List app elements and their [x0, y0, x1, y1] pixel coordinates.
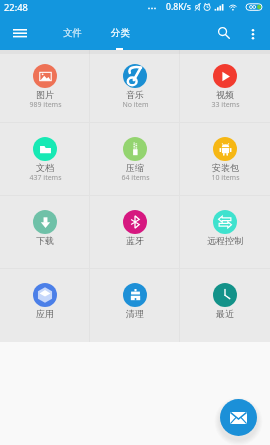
staticText: 安装包 [212, 162, 239, 173]
button[interactable]: More options [243, 18, 263, 50]
staticText: 437 items [29, 173, 62, 183]
staticText: 应用 [36, 308, 54, 319]
staticText: 视频 [216, 89, 234, 100]
staticText: 最近 [216, 308, 234, 319]
button[interactable]: 压缩 [90, 123, 180, 195]
staticText: 远程控制 [207, 235, 243, 246]
staticText: 33 items [211, 100, 240, 110]
button[interactable]: 清理 [90, 269, 180, 342]
button[interactable]: 文档 [0, 123, 90, 195]
staticText: 64 items [121, 173, 150, 183]
button[interactable]: Compose message [220, 399, 257, 436]
staticText: 文件 [63, 27, 82, 39]
button[interactable]: 最近 [180, 269, 270, 342]
button[interactable]: 蓝牙 [90, 196, 180, 268]
button[interactable]: Menu [7, 18, 33, 50]
button[interactable]: 音乐 [90, 50, 180, 122]
button[interactable]: 分类 [100, 18, 140, 50]
button[interactable]: 文件 [52, 18, 92, 50]
staticText: 文档 [36, 162, 54, 173]
staticText: 蓝牙 [126, 235, 144, 246]
staticText: 图片 [36, 89, 54, 100]
staticText: 音乐 [126, 89, 144, 100]
staticText: 10 items [211, 173, 240, 183]
staticText: 0.8K/s [166, 1, 191, 13]
staticText: No item [122, 100, 149, 110]
staticText: 22:48 [4, 1, 28, 14]
button[interactable]: 远程控制 [180, 196, 270, 268]
button[interactable]: 安装包 [180, 123, 270, 195]
staticText: 分类 [111, 27, 130, 39]
button[interactable]: 下载 [0, 196, 90, 268]
staticText: 下载 [36, 235, 54, 246]
button[interactable]: 图片 [0, 50, 90, 122]
staticText: 989 items [29, 100, 62, 110]
staticText: 压缩 [126, 162, 144, 173]
staticText: 清理 [126, 308, 144, 319]
button[interactable]: 视频 [180, 50, 270, 122]
button[interactable]: 应用 [0, 269, 90, 342]
button[interactable]: Search [211, 18, 237, 50]
